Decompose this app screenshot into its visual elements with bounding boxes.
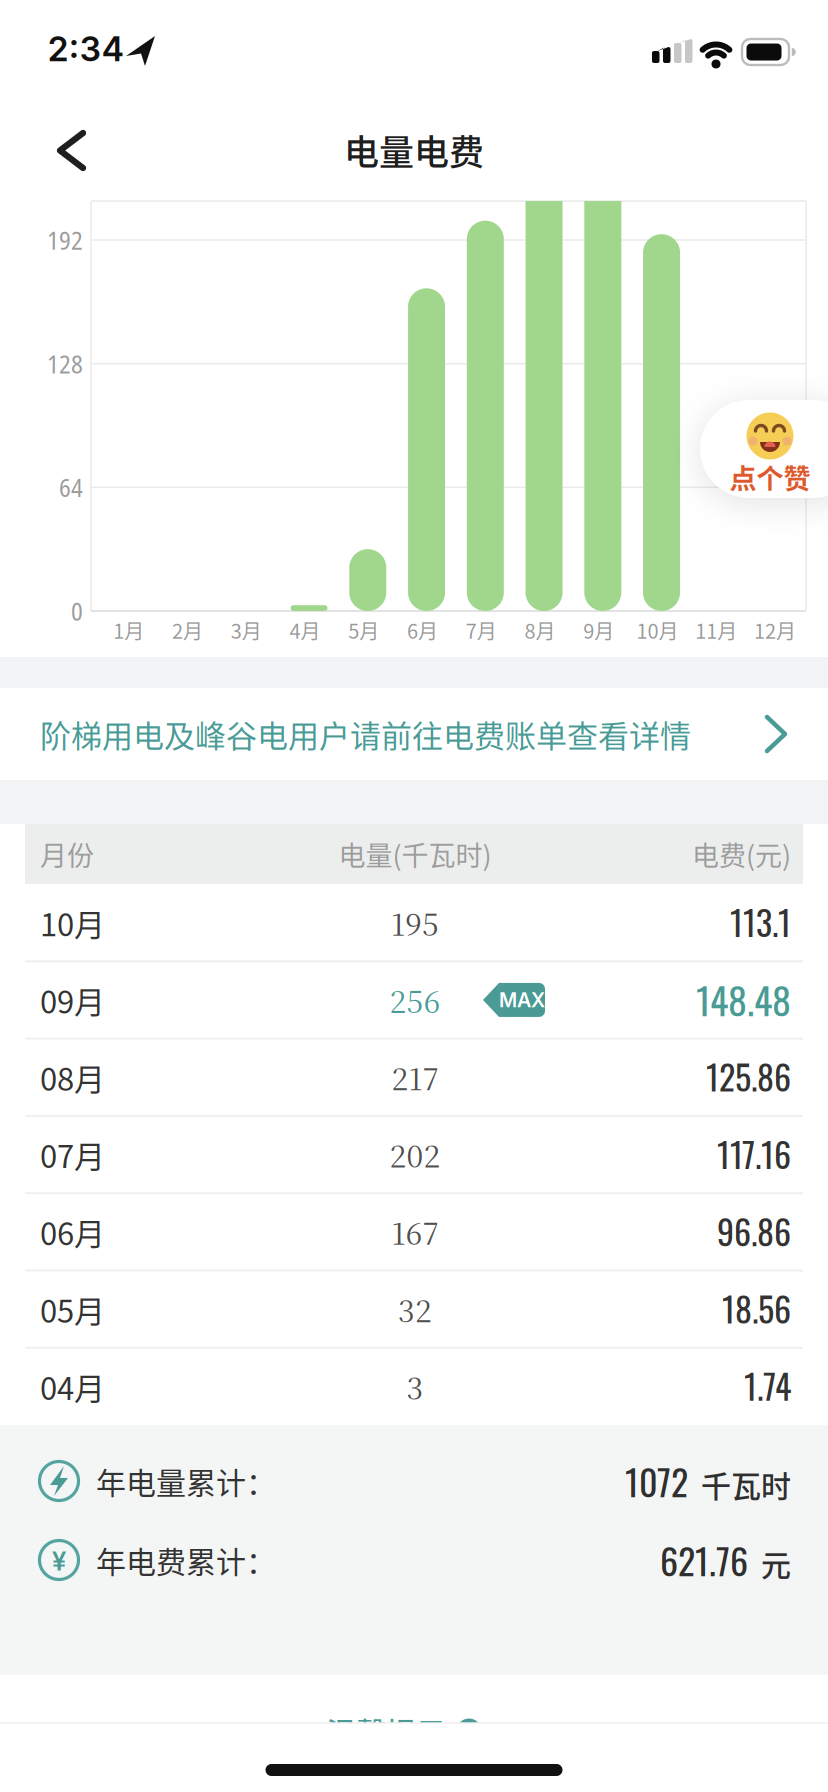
staticText: 32: [398, 1288, 432, 1331]
staticText: 2月: [172, 615, 203, 644]
staticText: 点个赞: [729, 457, 810, 497]
staticText: 192: [47, 223, 83, 257]
staticText: 千瓦时: [701, 1462, 791, 1506]
staticText: MAX: [499, 988, 545, 1012]
staticText: 1.74: [744, 1360, 791, 1411]
staticText: 月份: [40, 834, 94, 874]
staticText: 7月: [466, 615, 497, 644]
staticText: 05月: [40, 1287, 105, 1332]
staticText: 09月: [40, 977, 105, 1022]
staticText: 年电量累计：: [96, 1459, 276, 1503]
staticText: 电量电费: [344, 125, 484, 175]
staticText: 4月: [290, 615, 321, 644]
staticText: 2:34: [47, 28, 124, 69]
staticText: 0: [71, 594, 83, 628]
button[interactable]: 温馨提示: [304, 1713, 504, 1749]
staticText: 8月: [524, 615, 555, 644]
staticText: 1072: [625, 1454, 688, 1508]
staticText: 温馨提示: [326, 1709, 446, 1753]
staticText: 256: [389, 978, 440, 1021]
staticText: 6月: [407, 615, 438, 644]
staticText: 阶梯用电及峰谷电用户请前往电费账单查看详情: [40, 712, 691, 756]
staticText: 电费(元): [692, 834, 791, 874]
staticText: 217: [391, 1056, 438, 1099]
button[interactable]: 点个赞: [700, 400, 828, 498]
staticText: 年电费累计：: [96, 1538, 276, 1582]
staticText: 195: [391, 901, 439, 944]
staticText: 3: [406, 1365, 423, 1408]
staticText: 167: [391, 1210, 438, 1253]
staticText: 3月: [231, 615, 262, 644]
staticText: 元: [761, 1541, 791, 1585]
button[interactable]: 返回: [12, 113, 102, 187]
button[interactable]: 阶梯用电及峰谷电用户请前往电费账单查看详情: [0, 688, 828, 780]
staticText: ¥: [52, 1545, 66, 1577]
staticText: 07月: [40, 1132, 105, 1177]
staticText: 113.1: [730, 896, 791, 947]
staticText: 64: [59, 470, 83, 504]
staticText: 04月: [40, 1364, 105, 1409]
staticText: 18.56: [722, 1283, 791, 1333]
staticText: 9月: [583, 615, 614, 644]
staticText: 96.86: [717, 1206, 791, 1256]
staticText: 11月: [695, 615, 737, 644]
staticText: 125.86: [706, 1051, 791, 1101]
staticText: 202: [389, 1133, 440, 1176]
staticText: 621.76: [660, 1533, 748, 1587]
staticText: 5月: [348, 615, 379, 644]
staticText: 148.48: [696, 971, 791, 1027]
staticText: 1月: [113, 615, 144, 644]
staticText: 电量(千瓦时): [338, 834, 491, 874]
staticText: 12月: [754, 615, 796, 644]
staticText: 128: [47, 347, 83, 381]
staticText: 10月: [40, 900, 105, 945]
staticText: 117.16: [717, 1128, 791, 1179]
staticText: 08月: [40, 1055, 105, 1100]
staticText: 06月: [40, 1209, 105, 1254]
staticText: 10月: [636, 615, 678, 644]
